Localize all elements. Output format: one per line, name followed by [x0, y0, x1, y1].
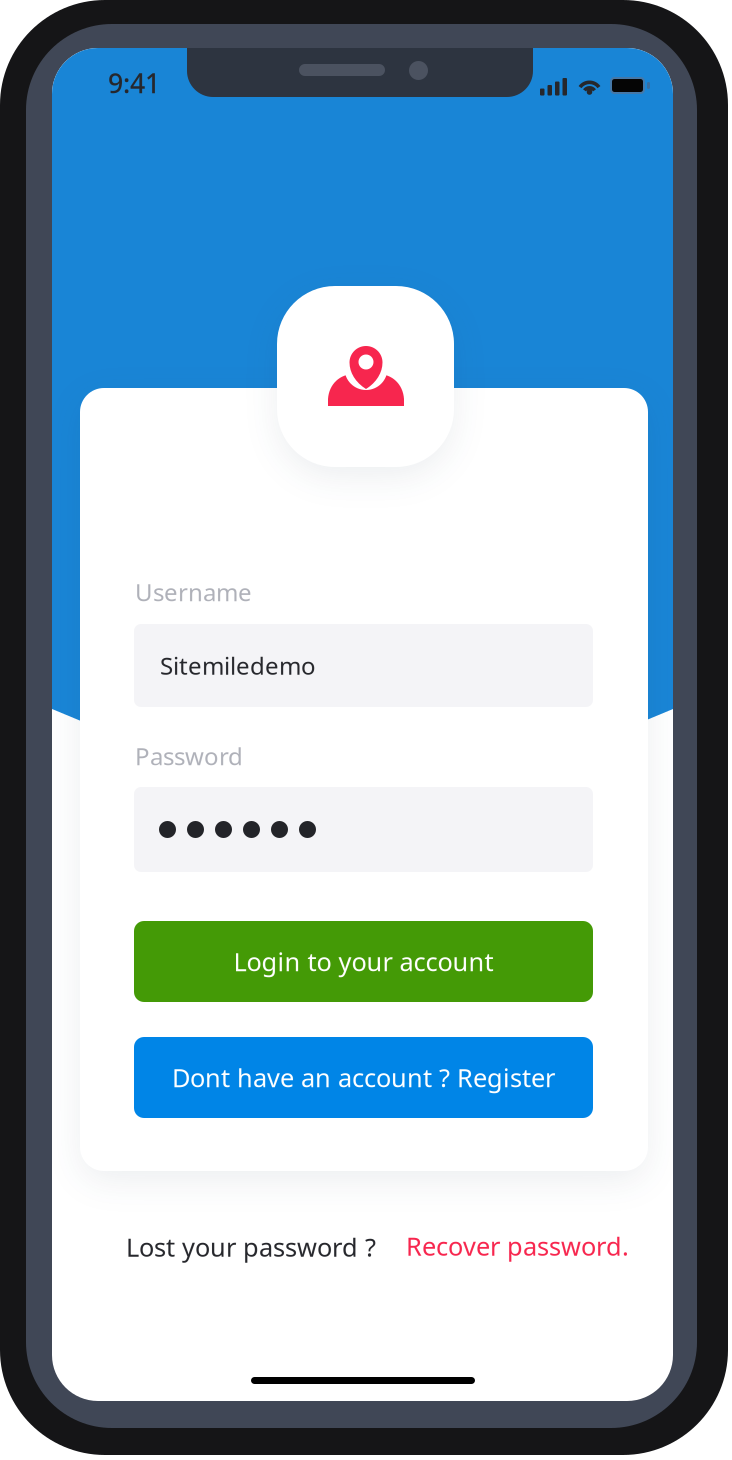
- staticText: Dont have an account ? Register: [172, 1061, 555, 1094]
- button[interactable]: Dont have an account ? Register: [134, 1037, 593, 1118]
- staticText: Username: [135, 576, 252, 608]
- button[interactable]: Password: [134, 787, 593, 872]
- staticText: Lost your password ?: [126, 1230, 376, 1264]
- button[interactable]: Recover password.: [406, 1229, 636, 1263]
- staticText: Password: [135, 740, 243, 772]
- staticText: 9:41: [108, 65, 160, 101]
- button[interactable]: Sitemiledemo: [134, 624, 593, 707]
- button[interactable]: Login to your account: [134, 921, 593, 1002]
- staticText: Sitemiledemo: [160, 650, 316, 681]
- staticText: Login to your account: [233, 945, 493, 978]
- staticText: Recover password.: [406, 1229, 629, 1263]
